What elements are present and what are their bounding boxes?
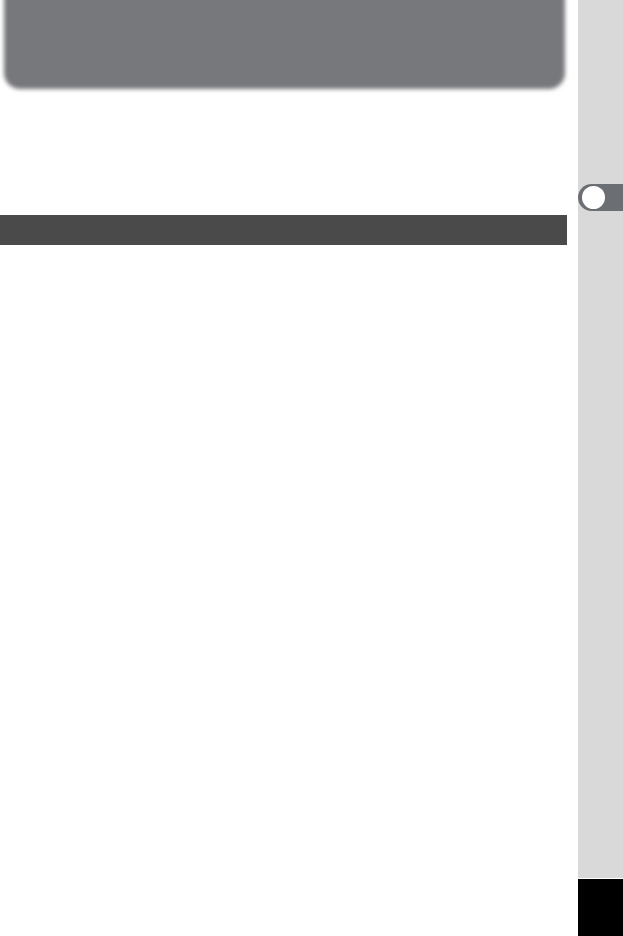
button[interactable]: Toggle bbox=[578, 184, 623, 211]
